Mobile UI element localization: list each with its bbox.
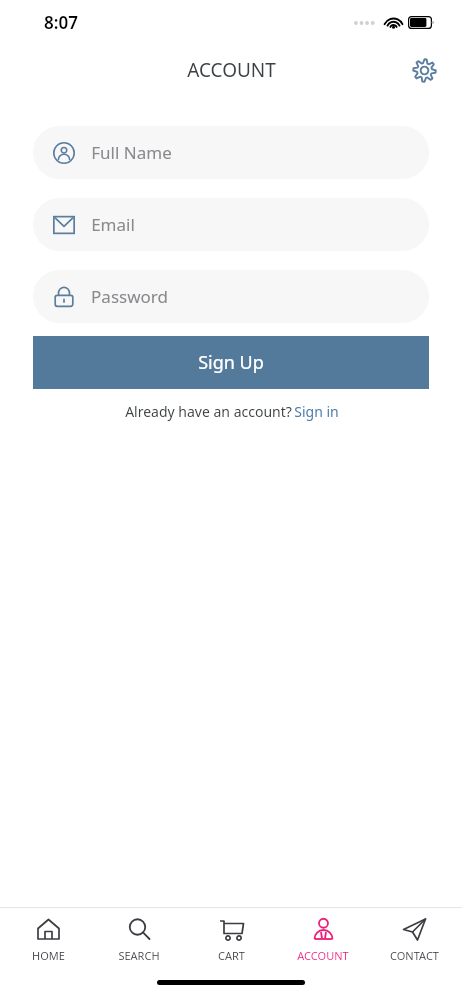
staticText: Password (91, 285, 168, 308)
button[interactable]: Email (33, 198, 429, 251)
button[interactable]: Sign Up (33, 336, 429, 389)
staticText: HOME (32, 948, 65, 963)
staticText: ACCOUNT (187, 57, 276, 83)
staticText: 8:07 (44, 11, 78, 34)
button[interactable]: Full Name (33, 126, 429, 179)
staticText: SEARCH (118, 948, 160, 963)
staticText: Email (91, 213, 135, 236)
button[interactable]: Settings (404, 50, 444, 90)
button[interactable]: CONTACT (370, 908, 458, 972)
staticText: Full Name (91, 141, 172, 164)
button[interactable]: Password (33, 270, 429, 323)
button[interactable]: ACCOUNT (279, 908, 367, 972)
staticText: CART (218, 948, 245, 963)
button[interactable]: SEARCH (95, 908, 183, 972)
button[interactable]: HOME (4, 908, 92, 972)
staticText: ACCOUNT (297, 948, 349, 963)
staticText: Already have an account? (123, 402, 294, 421)
staticText: Sign in (294, 402, 339, 421)
button[interactable]: Sign in (294, 402, 339, 421)
staticText: Sign Up (198, 350, 264, 375)
staticText: CONTACT (390, 948, 439, 963)
button[interactable]: CART (187, 908, 275, 972)
